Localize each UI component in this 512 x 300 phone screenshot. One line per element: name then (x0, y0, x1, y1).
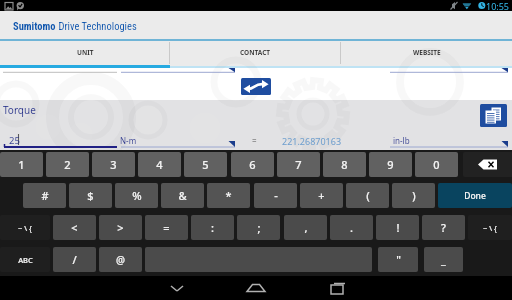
button[interactable]: UNIT (0, 41, 170, 68)
button[interactable]: ! (376, 215, 419, 240)
staticText: 10:55 (486, 0, 510, 11)
button[interactable]: 0 (415, 152, 458, 177)
staticText: 9 (387, 157, 394, 172)
staticText: 221.26870163 (282, 60, 342, 61)
button[interactable]: 5 (184, 152, 227, 177)
button[interactable]: 2 (46, 152, 89, 177)
button[interactable]: < (53, 215, 96, 240)
staticText: @ (116, 253, 125, 267)
button[interactable]: ~ \ { (0, 215, 50, 240)
staticText: WEBSITE (413, 48, 441, 57)
staticText: ? (441, 220, 446, 235)
button[interactable]: 1 (0, 152, 43, 177)
button[interactable]: Hide keyboard (150, 276, 206, 300)
button[interactable]: ; (237, 215, 280, 240)
button[interactable]: " (378, 247, 418, 272)
button[interactable]: * (207, 183, 250, 208)
button[interactable]: # (23, 183, 66, 208)
button[interactable]: Recents (310, 276, 366, 300)
staticText: in-lb (393, 135, 410, 146)
staticText: & (178, 188, 187, 203)
staticText: # (41, 188, 49, 203)
staticText: _ (441, 252, 446, 267)
staticText: ) (412, 188, 416, 203)
button[interactable]: ? (422, 215, 465, 240)
button[interactable]: : (191, 215, 234, 240)
staticText: 6 (249, 157, 256, 172)
button[interactable]: + (300, 183, 343, 208)
button[interactable]: 8 (323, 152, 366, 177)
staticText: * (225, 188, 232, 203)
button[interactable]: @ (99, 247, 142, 272)
staticText: ! (396, 220, 400, 235)
staticText: . (350, 220, 353, 235)
staticText: = (163, 220, 170, 235)
staticText: = (252, 135, 257, 146)
button[interactable]: _ (424, 247, 463, 272)
button[interactable]: & (161, 183, 204, 208)
button[interactable]: 3 (92, 152, 135, 177)
staticText: + (318, 188, 325, 203)
button[interactable]: / (53, 247, 96, 272)
staticText: 2 (64, 157, 71, 172)
button[interactable]: $ (69, 183, 112, 208)
staticText: 5 (202, 157, 209, 172)
staticText: Sumitomo (13, 20, 56, 32)
button[interactable]: Home (228, 276, 284, 300)
button[interactable]: ) (392, 183, 435, 208)
staticText: 7 (295, 157, 302, 172)
staticText: 221.26870163 (282, 135, 342, 147)
staticText: - (274, 188, 278, 203)
button[interactable]: Copy result (480, 104, 507, 127)
staticText: < (71, 220, 78, 235)
button[interactable]: , (284, 215, 327, 240)
button[interactable]: Swap units (241, 78, 271, 95)
staticText: ABC (18, 255, 33, 265)
button[interactable]: Backspace (463, 152, 512, 177)
staticText: / (72, 252, 77, 267)
button[interactable]: ~ \ { (468, 215, 512, 240)
button[interactable]: WEBSITE (341, 41, 512, 68)
button[interactable]: = (145, 215, 188, 240)
button[interactable]: 6 (231, 152, 274, 177)
staticText: UNIT (77, 48, 94, 57)
button[interactable]: CONTACT (170, 41, 341, 68)
button[interactable]: > (99, 215, 142, 240)
staticText: 8 (341, 157, 348, 172)
staticText: 4 (156, 157, 163, 172)
staticText: ; (257, 220, 261, 235)
staticText: $ (87, 188, 94, 203)
button[interactable]: Done (438, 183, 512, 208)
staticText: % (132, 188, 142, 203)
button[interactable]: % (115, 183, 158, 208)
button[interactable]: 9 (369, 152, 412, 177)
button[interactable]: - (254, 183, 297, 208)
staticText: ~ \ { (18, 223, 32, 233)
staticText: CONTACT (240, 48, 271, 57)
button[interactable]: 7 (277, 152, 320, 177)
staticText: > (117, 220, 124, 235)
staticText: Done (464, 190, 486, 202)
staticText: ( (366, 188, 370, 203)
button[interactable]: ( (346, 183, 389, 208)
button[interactable]: ABC (0, 247, 50, 272)
staticText: , (304, 220, 308, 235)
staticText: 1 (18, 157, 25, 172)
staticText: 3 (110, 157, 117, 172)
staticText: Drive Technologies (56, 20, 137, 32)
staticText: ~ \ { (483, 223, 497, 233)
staticText: 25 (9, 134, 20, 147)
staticText: : (211, 220, 214, 235)
staticText: 0 (433, 157, 440, 172)
button[interactable]: . (330, 215, 373, 240)
staticText: Torque (3, 103, 36, 117)
other: Backspace (463, 152, 512, 177)
staticText: N-m (120, 135, 137, 146)
staticText: " (396, 252, 401, 267)
button[interactable]: 4 (138, 152, 181, 177)
